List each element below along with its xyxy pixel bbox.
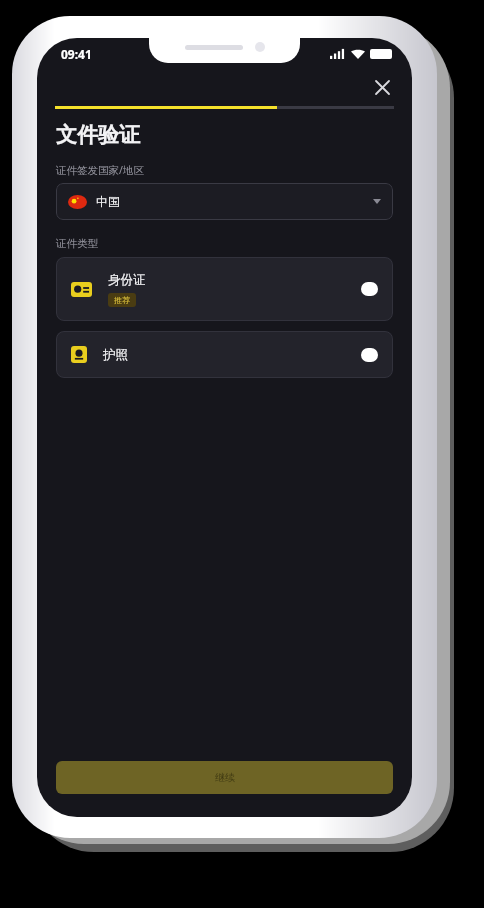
staticText: 继续 <box>215 771 235 784</box>
staticText: 中国 <box>96 194 120 209</box>
button[interactable]: Close <box>364 69 400 105</box>
staticText: 证件签发国家/地区 <box>56 163 144 177</box>
staticText: 09:41 <box>61 46 92 62</box>
button[interactable]: 护照 <box>56 331 393 378</box>
staticText: 文件验证 <box>56 122 140 148</box>
staticText: 护照 <box>103 347 128 363</box>
staticText: 身份证 <box>108 272 146 288</box>
button[interactable]: 继续 <box>56 761 393 794</box>
staticText: 推荐 <box>114 295 130 305</box>
staticText: 证件类型 <box>56 237 98 250</box>
button[interactable]: 中国 <box>56 183 393 220</box>
button[interactable]: 身份证 <box>56 257 393 321</box>
